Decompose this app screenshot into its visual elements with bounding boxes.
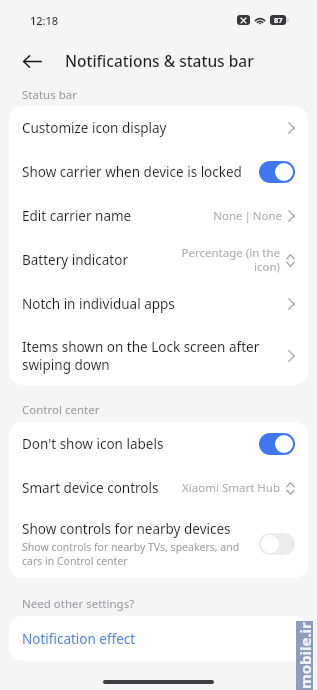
button[interactable]: Back	[15, 44, 49, 78]
button[interactable]: Show controls for nearby devices	[9, 510, 308, 578]
button[interactable]: Battery indicator	[9, 238, 308, 282]
staticText: Control center	[22, 402, 100, 418]
staticText: Items shown on the Lock screen after swi…	[22, 338, 260, 374]
staticText: Percentage (in the icon)	[168, 245, 280, 275]
button[interactable]: Notification effect	[9, 616, 308, 661]
staticText: Xiaomi Smart Hub	[168, 480, 280, 496]
button[interactable]: Show carrier when device is locked	[9, 150, 308, 194]
staticText: Show carrier when device is locked	[22, 163, 242, 181]
staticText: Status bar	[22, 87, 77, 103]
staticText: Notifications & status bar	[65, 50, 254, 71]
button[interactable]: Smart device controls	[9, 466, 308, 510]
button[interactable]: Toggle	[259, 161, 295, 183]
button[interactable]: Customize icon display	[9, 106, 308, 150]
staticText: Edit carrier name	[22, 207, 132, 225]
staticText: Notification effect	[22, 630, 136, 648]
staticText: Customize icon display	[22, 119, 167, 137]
button[interactable]: Edit carrier name	[9, 194, 308, 238]
staticText: 12:18	[30, 13, 59, 28]
button[interactable]: Don't show icon labels	[9, 422, 308, 466]
staticText: Show controls for nearby TVs, speakers, …	[22, 540, 240, 568]
button[interactable]: Toggle	[259, 533, 295, 555]
staticText: Notch in individual apps	[22, 295, 175, 313]
staticText: None | None	[170, 208, 282, 224]
staticText: Battery indicator	[22, 251, 128, 269]
staticText: Don't show icon labels	[22, 435, 164, 453]
button[interactable]: Notch in individual apps	[9, 282, 308, 326]
staticText: Need other settings?	[22, 596, 135, 612]
button[interactable]: Toggle	[259, 433, 295, 455]
staticText: Show controls for nearby devices	[22, 520, 231, 538]
staticText: Smart device controls	[22, 479, 159, 497]
staticText: 87	[274, 15, 283, 25]
button[interactable]: Items shown on the Lock screen after swi…	[9, 326, 308, 385]
